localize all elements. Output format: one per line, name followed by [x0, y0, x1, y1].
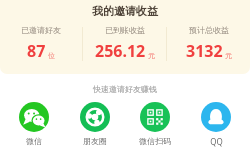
button[interactable]: QQ	[187, 102, 245, 147]
staticText: 我的邀请收益	[92, 4, 158, 18]
staticText: 预计总收益	[189, 25, 229, 35]
button[interactable]: 朋友圈	[66, 102, 124, 146]
staticText: 87	[27, 40, 46, 62]
staticText: 3132	[186, 40, 223, 62]
staticText: QQ	[210, 136, 223, 147]
button[interactable]: 微信	[5, 102, 63, 146]
staticText: 元	[225, 51, 232, 60]
staticText: 快速邀请好友赚钱	[93, 84, 157, 94]
staticText: 已邀请好友	[21, 25, 61, 35]
staticText: 256.12	[95, 40, 146, 62]
staticText: 朋友圈	[83, 136, 107, 146]
button[interactable]: 微信扫码	[126, 102, 184, 146]
staticText: 位	[48, 51, 55, 60]
staticText: 元	[148, 51, 155, 60]
staticText: 已到账收益	[105, 25, 145, 35]
staticText: 微信	[26, 136, 42, 146]
staticText: 微信扫码	[139, 136, 171, 146]
